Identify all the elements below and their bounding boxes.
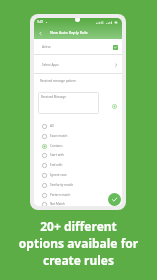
staticText: 20+ different options avaibale for creat… bbox=[0, 218, 157, 269]
staticText: Start with bbox=[50, 153, 64, 157]
button[interactable]: End with bbox=[34, 160, 122, 170]
button[interactable]: Start with bbox=[34, 150, 122, 160]
button[interactable]: Received Message bbox=[38, 92, 99, 114]
staticText: End with bbox=[50, 163, 63, 167]
staticText: Similarity match bbox=[50, 183, 74, 187]
staticText: All bbox=[50, 124, 54, 128]
button[interactable]: All bbox=[34, 121, 122, 131]
button[interactable]: Contains bbox=[34, 141, 122, 151]
staticText: New Auto Reply Rule bbox=[50, 30, 88, 35]
button[interactable]: Not Match bbox=[34, 199, 122, 206]
button[interactable]: Similarity match bbox=[34, 180, 122, 190]
staticText: 9:41 bbox=[37, 20, 44, 24]
button[interactable]: Active bbox=[34, 40, 122, 54]
button[interactable]: Add pattern bbox=[110, 102, 119, 111]
staticText: Active bbox=[42, 45, 51, 49]
staticText: Received message pattern bbox=[40, 79, 76, 83]
staticText: Not Match bbox=[50, 202, 65, 206]
button[interactable]: Exact match bbox=[34, 131, 122, 141]
staticText: Pattern match bbox=[50, 193, 71, 197]
button[interactable]: Save rule bbox=[108, 193, 121, 206]
staticText: Ignore case bbox=[50, 173, 67, 177]
staticText: Contains bbox=[50, 144, 63, 148]
staticText: Received Message bbox=[41, 95, 66, 99]
button[interactable]: Pattern match bbox=[34, 190, 122, 200]
staticText: Exact match bbox=[50, 134, 68, 138]
staticText: Select Apps bbox=[42, 63, 59, 67]
button[interactable]: Ignore case bbox=[34, 170, 122, 180]
button[interactable]: Back bbox=[36, 29, 44, 37]
button[interactable]: Select Apps bbox=[34, 58, 122, 72]
